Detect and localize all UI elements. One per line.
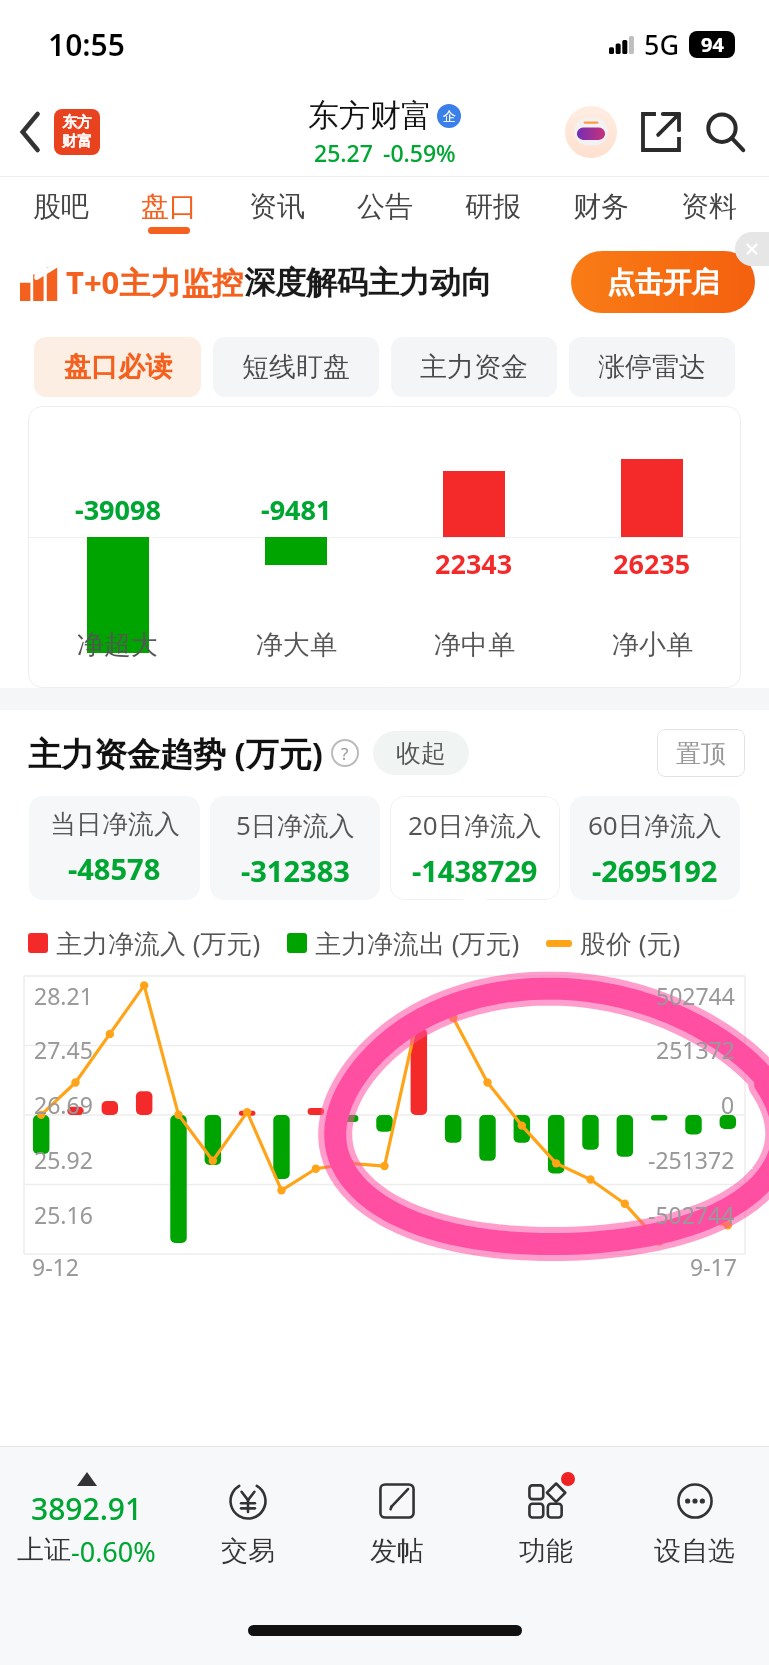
- staticText: 股价 (元): [580, 925, 681, 961]
- staticText: -1438729: [412, 851, 538, 890]
- button[interactable]: 收起: [373, 731, 469, 775]
- button[interactable]: 置顶: [657, 729, 745, 777]
- button[interactable]: 股吧: [6, 176, 115, 236]
- staticText: 0: [721, 1089, 735, 1120]
- staticText: 置顶: [676, 738, 726, 769]
- staticText: -39098: [75, 491, 161, 528]
- button[interactable]: Search: [699, 106, 751, 158]
- staticText: ✕: [744, 238, 760, 260]
- staticText: T+0主力监控: [66, 261, 244, 303]
- button[interactable]: 研报: [439, 176, 547, 236]
- staticText: 深度解码主力动向: [244, 263, 492, 302]
- staticText: 净超大: [77, 628, 158, 662]
- button[interactable]: 涨停雷达: [569, 337, 735, 397]
- staticText: 收起: [396, 738, 446, 769]
- staticText: 251372: [656, 1034, 735, 1065]
- staticText: 25.16: [34, 1199, 93, 1230]
- staticText: ?: [341, 742, 349, 765]
- staticText: 28.21: [34, 980, 93, 1011]
- button[interactable]: 资料: [655, 176, 763, 236]
- button[interactable]: 5日净流入: [210, 796, 380, 900]
- staticText: 主力资金: [420, 350, 528, 384]
- staticText: 功能: [519, 1534, 573, 1568]
- button[interactable]: 公告: [331, 176, 439, 236]
- button[interactable]: 资讯: [223, 176, 331, 236]
- staticText: 9-12: [32, 1251, 79, 1282]
- staticText: 盘口必读: [64, 350, 172, 384]
- staticText: 东方: [62, 113, 92, 132]
- staticText: 净中单: [434, 628, 515, 662]
- staticText: 点击开启: [607, 265, 719, 300]
- staticText: -48578: [68, 849, 161, 888]
- staticText: 财富: [62, 132, 92, 151]
- staticText: -251372: [648, 1144, 735, 1175]
- staticText: 股吧: [33, 189, 89, 224]
- staticText: 短线盯盘: [242, 350, 350, 384]
- button[interactable]: 主力资金: [391, 337, 557, 397]
- button[interactable]: 当日净流入: [29, 796, 200, 900]
- staticText: 净大单: [256, 628, 337, 662]
- staticText: 20日净流入: [408, 807, 542, 843]
- staticText: 公告: [357, 189, 413, 224]
- staticText: 25.27: [314, 137, 373, 168]
- staticText: 当日净流入: [50, 808, 180, 841]
- button[interactable]: AI assistant: [563, 104, 619, 160]
- staticText: 26.69: [34, 1089, 93, 1120]
- staticText: 60日净流入: [588, 807, 722, 843]
- staticText: 10:55: [48, 24, 125, 65]
- staticText: 3892.91: [31, 1488, 143, 1529]
- button[interactable]: 20日净流入: [390, 796, 560, 900]
- staticText: 25.92: [34, 1144, 93, 1175]
- button[interactable]: T+0主力监控: [20, 236, 755, 328]
- button[interactable]: 点击开启: [571, 251, 755, 313]
- staticText: 主力净流出 (万元): [315, 925, 520, 961]
- button[interactable]: 3892.91: [0, 1447, 173, 1595]
- staticText: 研报: [465, 189, 521, 224]
- staticText: 涨停雷达: [598, 350, 706, 384]
- staticText: 502744: [656, 980, 735, 1011]
- staticText: 资料: [681, 189, 737, 224]
- staticText: -2695192: [592, 851, 718, 890]
- staticText: 上证: [17, 1533, 71, 1567]
- button[interactable]: 发帖: [322, 1447, 471, 1595]
- staticText: 主力资金趋势 (万元): [28, 731, 323, 776]
- button[interactable]: -39098: [28, 406, 741, 688]
- button[interactable]: Back: [12, 109, 108, 155]
- staticText: 交易: [221, 1534, 275, 1568]
- button[interactable]: Share: [635, 106, 687, 158]
- button[interactable]: 设自选: [620, 1447, 769, 1595]
- staticText: 5日净流入: [236, 807, 355, 843]
- staticText: 22343: [435, 545, 513, 582]
- staticText: -0.60%: [71, 1533, 156, 1570]
- button[interactable]: Help: [331, 739, 359, 767]
- staticText: 主力净流入 (万元): [56, 925, 261, 961]
- staticText: 盘口: [141, 189, 197, 224]
- staticText: -312383: [241, 851, 350, 890]
- staticText: -502744: [648, 1199, 735, 1230]
- staticText: -9481: [261, 491, 332, 528]
- button[interactable]: 盘口: [115, 176, 223, 236]
- staticText: 企: [443, 108, 456, 124]
- button[interactable]: 交易: [173, 1447, 322, 1595]
- staticText: 发帖: [370, 1534, 424, 1568]
- staticText: -0.59%: [383, 137, 456, 168]
- staticText: 5G: [644, 26, 680, 63]
- staticText: 27.45: [34, 1034, 93, 1065]
- staticText: 26235: [613, 545, 691, 582]
- button[interactable]: 财务: [547, 176, 655, 236]
- staticText: 资讯: [249, 189, 305, 224]
- staticText: 9-17: [690, 1251, 737, 1282]
- staticText: 东方财富: [308, 96, 432, 135]
- staticText: 设自选: [654, 1534, 735, 1568]
- staticText: 财务: [573, 189, 629, 224]
- staticText: 94: [701, 31, 724, 58]
- staticText: 净小单: [612, 628, 693, 662]
- button[interactable]: 60日净流入: [570, 796, 740, 900]
- button[interactable]: 盘口必读: [34, 337, 201, 397]
- button[interactable]: Close: [735, 232, 769, 266]
- button[interactable]: 功能: [471, 1447, 620, 1595]
- button[interactable]: 短线盯盘: [213, 337, 379, 397]
